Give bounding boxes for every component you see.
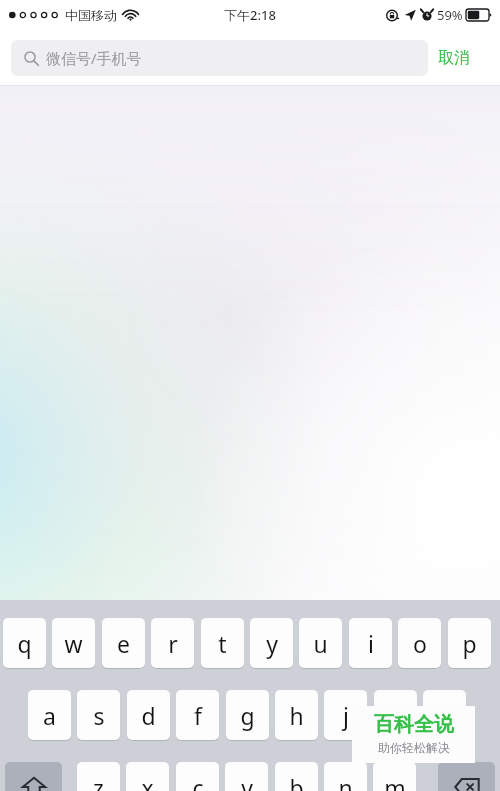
- button[interactable]: Backspace: [438, 762, 495, 791]
- staticText: 中国移动: [65, 7, 117, 23]
- staticText: b: [289, 772, 304, 791]
- button[interactable]: o: [398, 618, 441, 668]
- staticText: c: [192, 772, 204, 791]
- staticText: j: [343, 700, 349, 731]
- button[interactable]: u: [299, 618, 342, 668]
- staticText: h: [289, 700, 304, 731]
- staticText: p: [462, 628, 477, 659]
- button[interactable]: f: [176, 690, 219, 740]
- staticText: r: [168, 628, 178, 659]
- button[interactable]: c: [176, 762, 219, 791]
- button[interactable]: 微信号/手机号: [11, 40, 428, 76]
- staticText: 59%: [437, 6, 463, 24]
- staticText: 百科全说: [374, 712, 454, 737]
- button[interactable]: 取消: [438, 38, 470, 78]
- staticText: a: [43, 700, 56, 731]
- staticText: f: [194, 700, 202, 731]
- staticText: t: [218, 628, 227, 659]
- button[interactable]: l: [423, 690, 466, 740]
- staticText: n: [338, 772, 353, 791]
- button[interactable]: Shift: [5, 762, 62, 791]
- button[interactable]: g: [226, 690, 269, 740]
- button[interactable]: q: [3, 618, 46, 668]
- button[interactable]: d: [127, 690, 170, 740]
- button[interactable]: x: [126, 762, 169, 791]
- button[interactable]: k: [374, 690, 417, 740]
- staticText: l: [442, 700, 448, 731]
- staticText: k: [389, 700, 402, 731]
- staticText: v: [241, 772, 253, 791]
- button[interactable]: p: [448, 618, 491, 668]
- button[interactable]: z: [77, 762, 120, 791]
- button[interactable]: e: [102, 618, 145, 668]
- button[interactable]: a: [28, 690, 71, 740]
- staticText: i: [368, 628, 374, 659]
- staticText: m: [384, 772, 406, 791]
- staticText: w: [64, 628, 83, 659]
- staticText: 微信号/手机号: [46, 48, 142, 68]
- button[interactable]: y: [250, 618, 293, 668]
- button[interactable]: r: [151, 618, 194, 668]
- staticText: q: [17, 628, 32, 659]
- staticText: d: [141, 700, 156, 731]
- button[interactable]: h: [275, 690, 318, 740]
- button[interactable]: m: [373, 762, 416, 791]
- staticText: z: [93, 772, 104, 791]
- button[interactable]: n: [324, 762, 367, 791]
- staticText: 下午2:18: [224, 6, 276, 24]
- button[interactable]: v: [225, 762, 268, 791]
- staticText: y: [266, 628, 278, 659]
- staticText: 取消: [438, 48, 470, 68]
- button[interactable]: b: [275, 762, 318, 791]
- button[interactable]: t: [201, 618, 244, 668]
- staticText: o: [413, 628, 427, 659]
- staticText: g: [240, 700, 255, 731]
- staticText: s: [93, 700, 105, 731]
- button[interactable]: s: [77, 690, 120, 740]
- button[interactable]: i: [349, 618, 392, 668]
- staticText: 助你轻松解决: [378, 740, 450, 755]
- button[interactable]: j: [324, 690, 367, 740]
- staticText: u: [313, 628, 328, 659]
- staticText: x: [141, 772, 154, 791]
- button[interactable]: w: [52, 618, 95, 668]
- staticText: e: [117, 628, 130, 659]
